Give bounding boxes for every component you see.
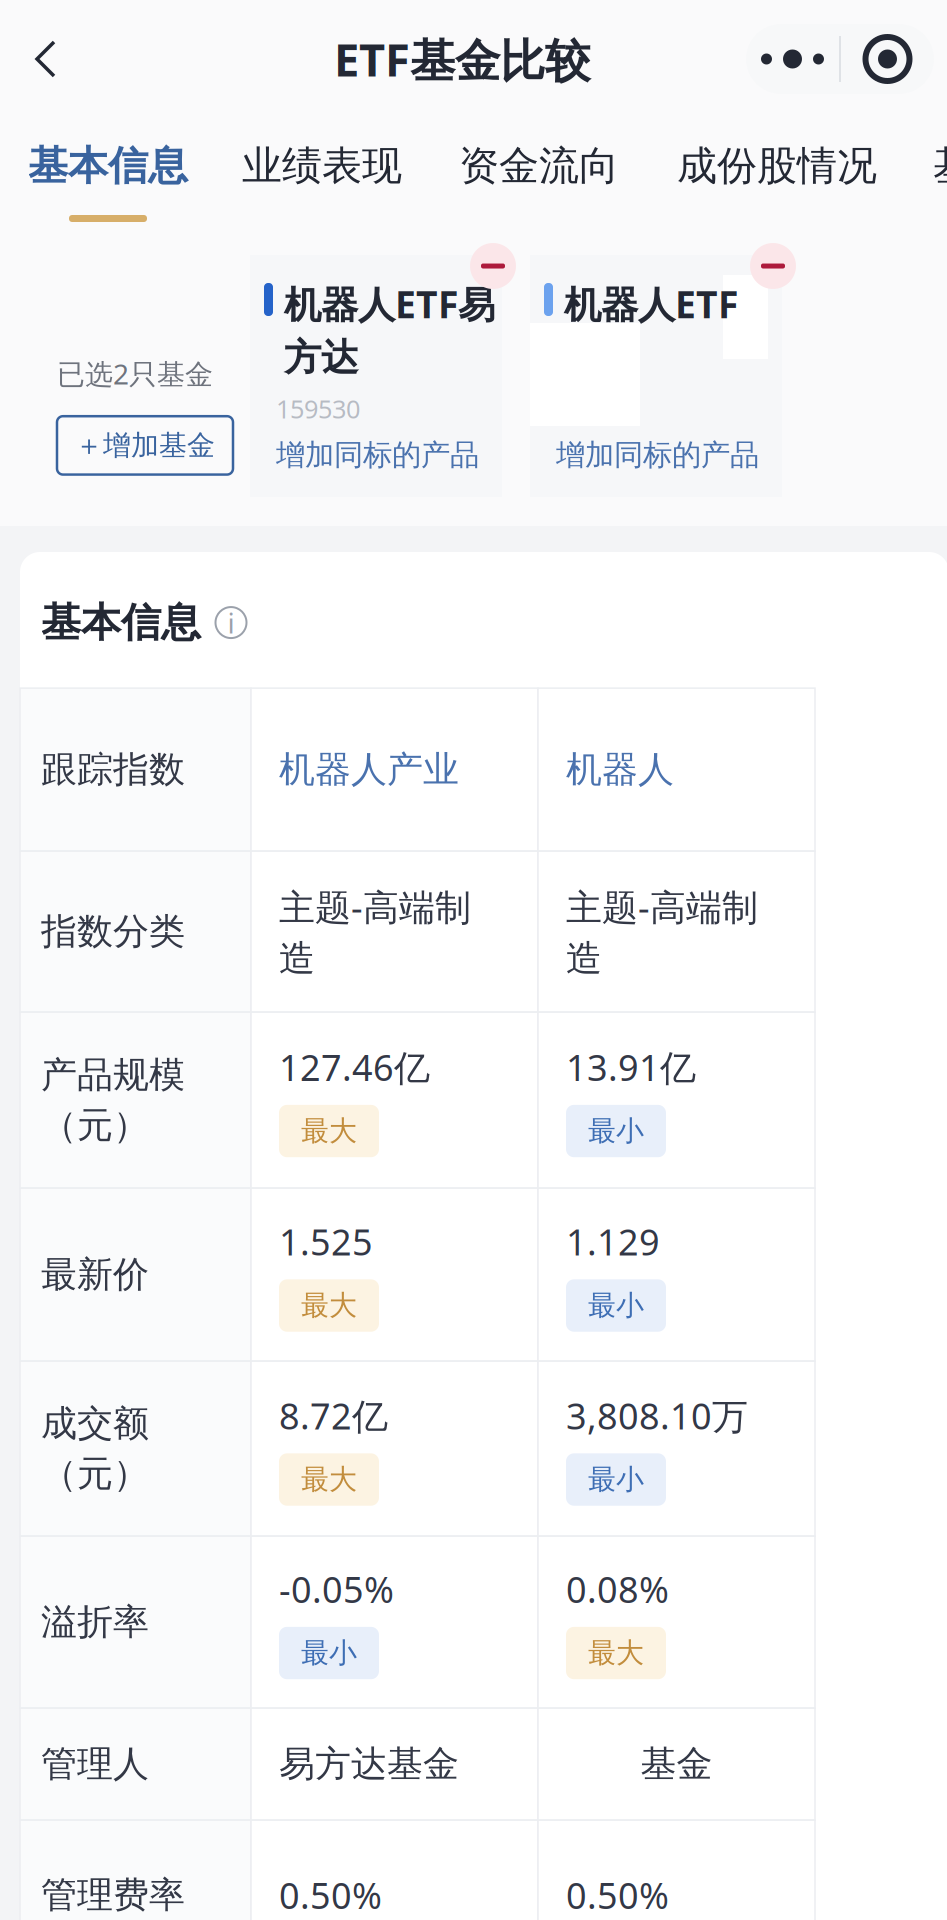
staticText: 127.46亿 [279, 1043, 430, 1091]
staticText: 增加同标的产品 [556, 437, 759, 473]
staticText: i [227, 604, 234, 641]
staticText: 指数分类 [41, 909, 185, 954]
staticText: 机器人ETF [564, 279, 738, 329]
staticText: 溢折率 [41, 1600, 149, 1644]
button[interactable]: ＋增加基金 [57, 416, 233, 475]
button[interactable]: 基 [934, 118, 947, 230]
staticText: 最大 [301, 1288, 357, 1323]
staticText: （元） [41, 1452, 149, 1496]
staticText: 0.08% [566, 1565, 669, 1613]
button[interactable]: 业绩表现 [241, 118, 403, 230]
staticText: 最小 [588, 1288, 644, 1323]
staticText: 基金 [640, 1742, 712, 1786]
staticText: 基 [933, 141, 947, 190]
button[interactable]: Remove fund [470, 243, 516, 289]
staticText: 机器人ETF易 [284, 279, 495, 329]
staticText: 0.50% [279, 1871, 382, 1919]
staticText: 最新价 [41, 1252, 149, 1297]
staticText: 增加同标的产品 [276, 437, 479, 473]
staticText: 1.129 [566, 1217, 660, 1265]
staticText: 造 [279, 936, 315, 981]
staticText: （元） [41, 1103, 149, 1147]
staticText: 最大 [588, 1636, 644, 1670]
staticText: 机器人产业 [279, 747, 459, 792]
staticText: 管理费率 [41, 1873, 185, 1917]
staticText: 3,808.10万 [566, 1391, 748, 1439]
staticText: ＋增加基金 [75, 428, 215, 463]
staticText: 资金流向 [459, 141, 619, 190]
staticText: 产品规模 [41, 1053, 185, 1097]
staticText: 主题-高端制 [279, 883, 471, 930]
staticText: 成交额 [41, 1401, 149, 1446]
staticText: -0.05% [279, 1565, 394, 1613]
staticText: 主题-高端制 [566, 883, 758, 930]
staticText: 13.91亿 [566, 1043, 696, 1091]
staticText: 基本信息 [28, 141, 188, 190]
button[interactable]: Back [0, 0, 92, 118]
staticText: 管理人 [41, 1742, 149, 1786]
staticText: 造 [566, 936, 602, 981]
staticText: 已选2只基金 [57, 355, 213, 392]
staticText: 0.50% [566, 1871, 669, 1919]
button[interactable]: 增加同标的产品 [530, 437, 759, 497]
staticText: 最小 [588, 1462, 644, 1497]
staticText: 成份股情况 [677, 141, 877, 190]
staticText: 机器人 [566, 747, 674, 792]
staticText: 最小 [588, 1114, 644, 1148]
button[interactable]: 基本信息 [27, 118, 189, 230]
staticText: 8.72亿 [279, 1391, 388, 1439]
staticText: 方达 [284, 335, 358, 380]
button[interactable]: 资金流向 [458, 118, 620, 230]
button[interactable]: Close mini program [841, 24, 934, 94]
button[interactable]: More [746, 24, 839, 94]
staticText: 159530 [276, 392, 360, 425]
staticText: 业绩表现 [242, 141, 402, 190]
staticText: 最小 [301, 1636, 357, 1670]
staticText: 跟踪指数 [41, 747, 185, 792]
button[interactable]: 成份股情况 [674, 118, 880, 230]
button[interactable]: About 基本信息 [214, 606, 248, 640]
staticText: 最大 [301, 1462, 357, 1497]
staticText: 易方达基金 [279, 1742, 459, 1786]
staticText: 1.525 [279, 1217, 373, 1265]
button[interactable]: 增加同标的产品 [250, 437, 479, 497]
staticText: ETF基金比较 [334, 29, 590, 89]
button[interactable]: Remove fund [750, 243, 796, 289]
staticText: 基本信息 [41, 598, 201, 647]
staticText: 最大 [301, 1114, 357, 1148]
